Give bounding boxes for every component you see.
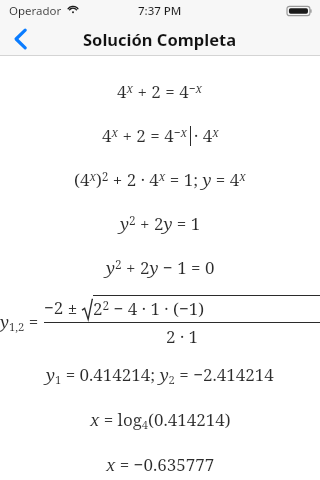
staticText: y2 + 2y − 1 = 0 (106, 256, 215, 279)
button[interactable]: Back (0, 22, 40, 56)
staticText: y1 = 0.414214; y2 = −2.414214 (46, 363, 274, 387)
staticText: x = log4(0.414214) (90, 408, 231, 432)
staticText: (4x)2 + 2 · 4x = 1; y = 4x (74, 168, 246, 191)
staticText: · 4x (194, 124, 219, 147)
staticText: 4x + 2 = 4−x (102, 124, 188, 147)
staticText: −2 ± (44, 296, 82, 319)
staticText: x = −0.635777 (106, 453, 215, 476)
staticText: 2 · 1 (166, 325, 199, 348)
staticText: Solución Completa (83, 28, 237, 50)
staticText: y1,2 = (0, 310, 43, 334)
staticText: Operador (9, 3, 62, 19)
staticText: 22 − 4 · 1 · (−1) (93, 297, 205, 320)
staticText: y2 + 2y = 1 (120, 212, 201, 235)
staticText: 4x + 2 = 4−x (117, 80, 203, 103)
staticText: 7:37 PM (138, 3, 182, 19)
